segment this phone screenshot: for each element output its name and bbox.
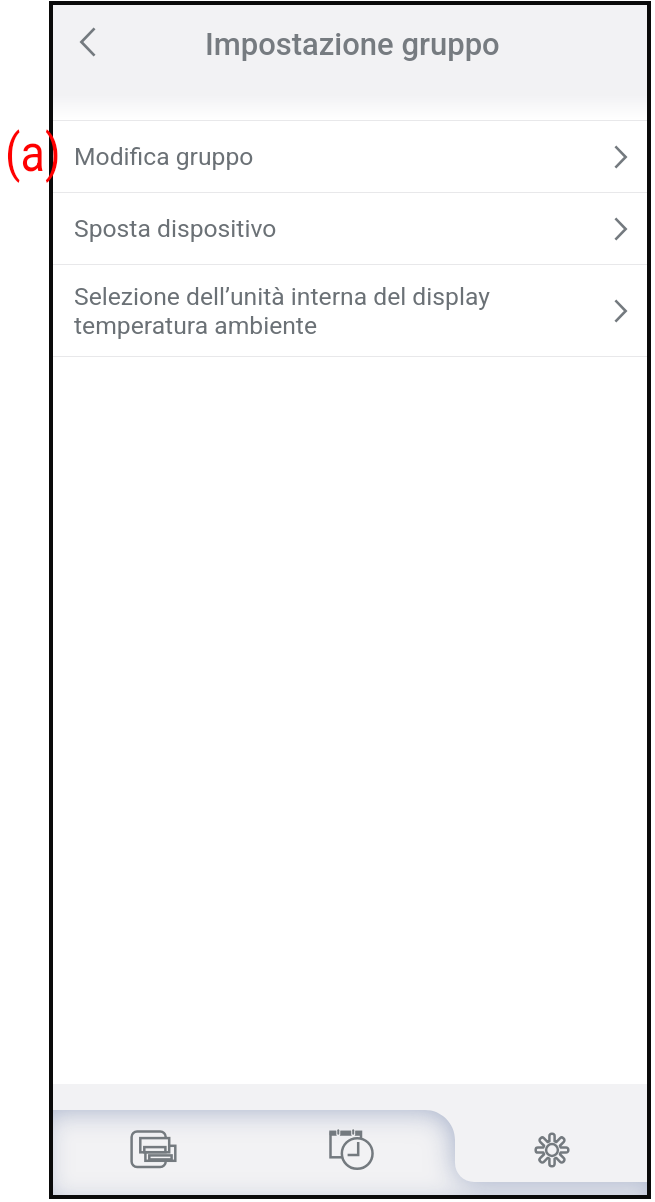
staticText: Impostazione gruppo (205, 26, 500, 62)
staticText: Modifica gruppo (74, 142, 603, 171)
staticText: Sposta dispositivo (74, 214, 603, 243)
button[interactable]: Devices (53, 1084, 251, 1195)
button[interactable]: Sposta dispositivo (53, 192, 647, 264)
button[interactable]: Selezione dell’unità interna del display… (53, 264, 647, 356)
button[interactable]: Schedule (251, 1084, 449, 1195)
staticText: Selezione dell’unità interna del display… (74, 282, 603, 340)
button[interactable]: Back (53, 10, 123, 80)
button[interactable]: Settings (449, 1084, 647, 1195)
button[interactable]: Modifica gruppo (53, 120, 647, 192)
staticText: (a) (5, 123, 61, 184)
